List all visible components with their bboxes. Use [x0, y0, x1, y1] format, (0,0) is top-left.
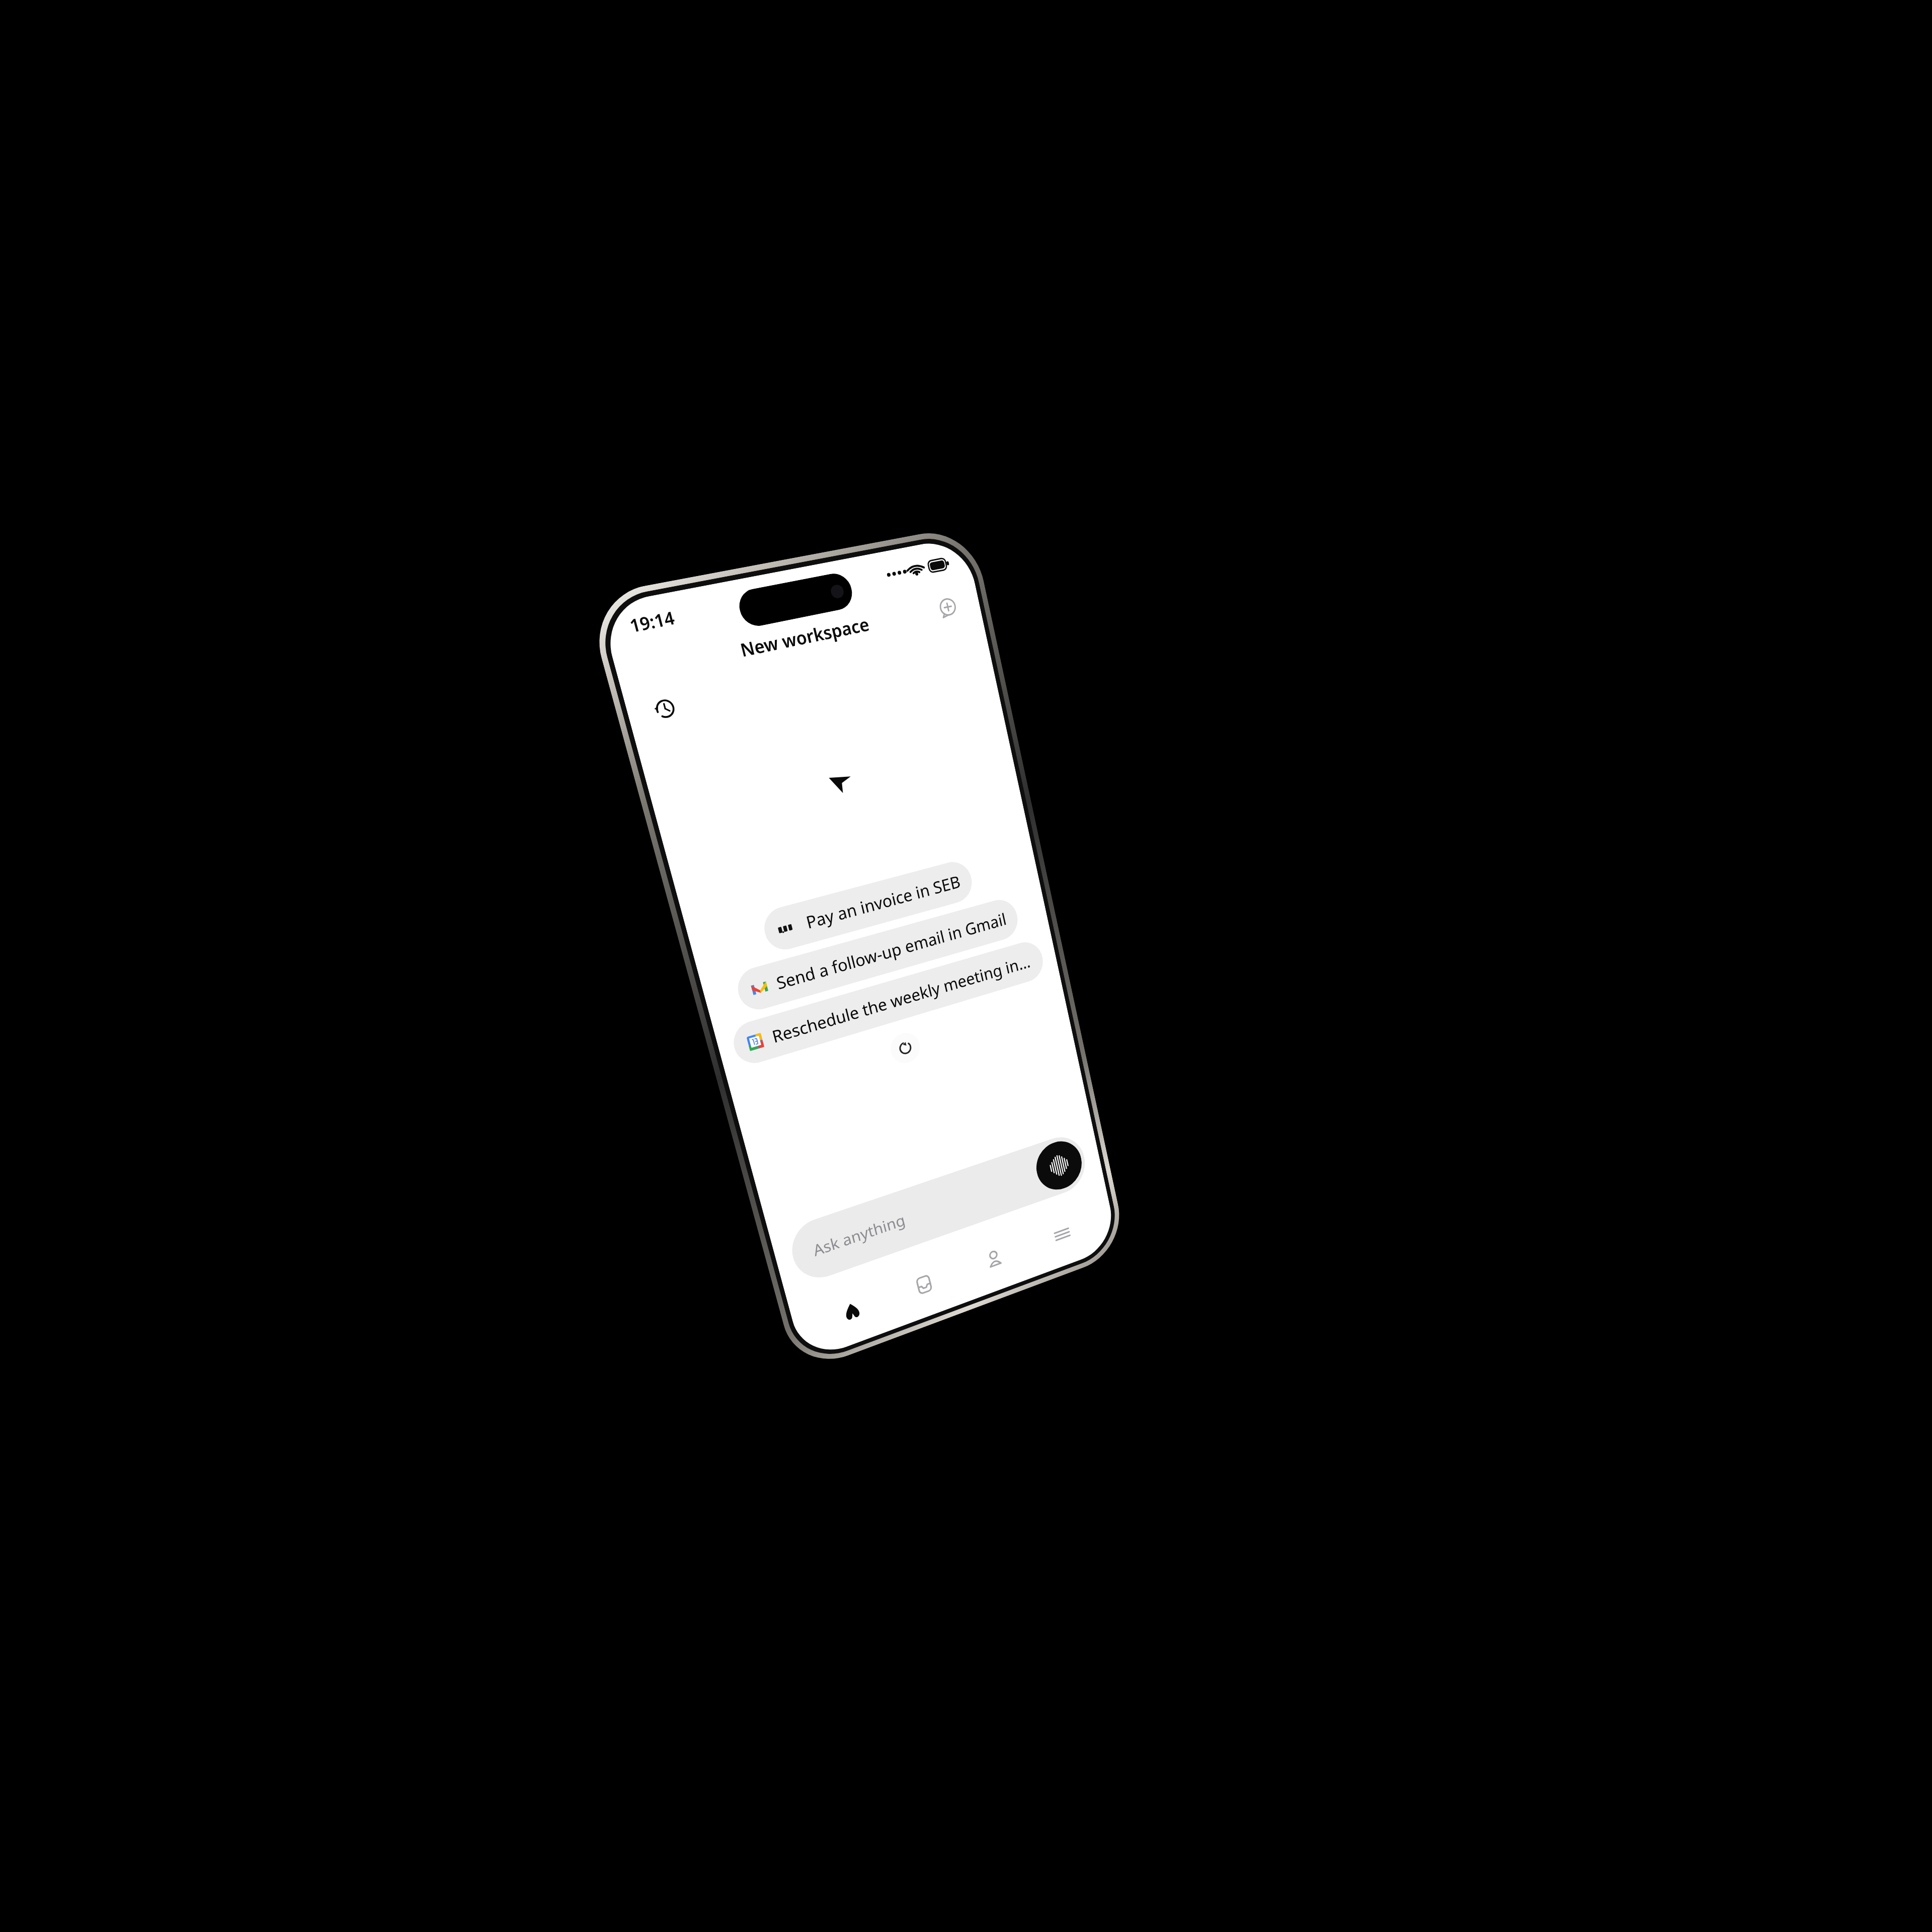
button[interactable]: New chat [931, 590, 964, 624]
button[interactable]: Menu [1022, 1196, 1101, 1274]
staticText: Ask anything [811, 1209, 907, 1261]
button[interactable]: Profile [953, 1219, 1035, 1299]
button[interactable]: Ask anything [786, 1130, 1090, 1286]
staticText: New workspace [738, 612, 871, 662]
button[interactable]: Inbox [881, 1244, 966, 1325]
staticText: Reschedule the weekly meeting in Go… [770, 950, 1034, 1048]
staticText: Send a follow-up email in Gmail [774, 908, 1008, 994]
staticText: 19:14 [627, 605, 677, 638]
button[interactable]: Voice input [1032, 1135, 1086, 1196]
button[interactable]: History [645, 690, 684, 728]
button[interactable]: Reschedule the weekly meeting in Go… [729, 938, 1047, 1068]
staticText: Pay an invoice in SEB [804, 870, 962, 933]
button[interactable]: Pay an invoice in SEB [760, 858, 976, 954]
button[interactable]: Refresh suggestions [887, 1029, 923, 1067]
button[interactable]: Home [807, 1270, 895, 1352]
button[interactable]: Send a follow-up email in Gmail [733, 895, 1021, 1015]
